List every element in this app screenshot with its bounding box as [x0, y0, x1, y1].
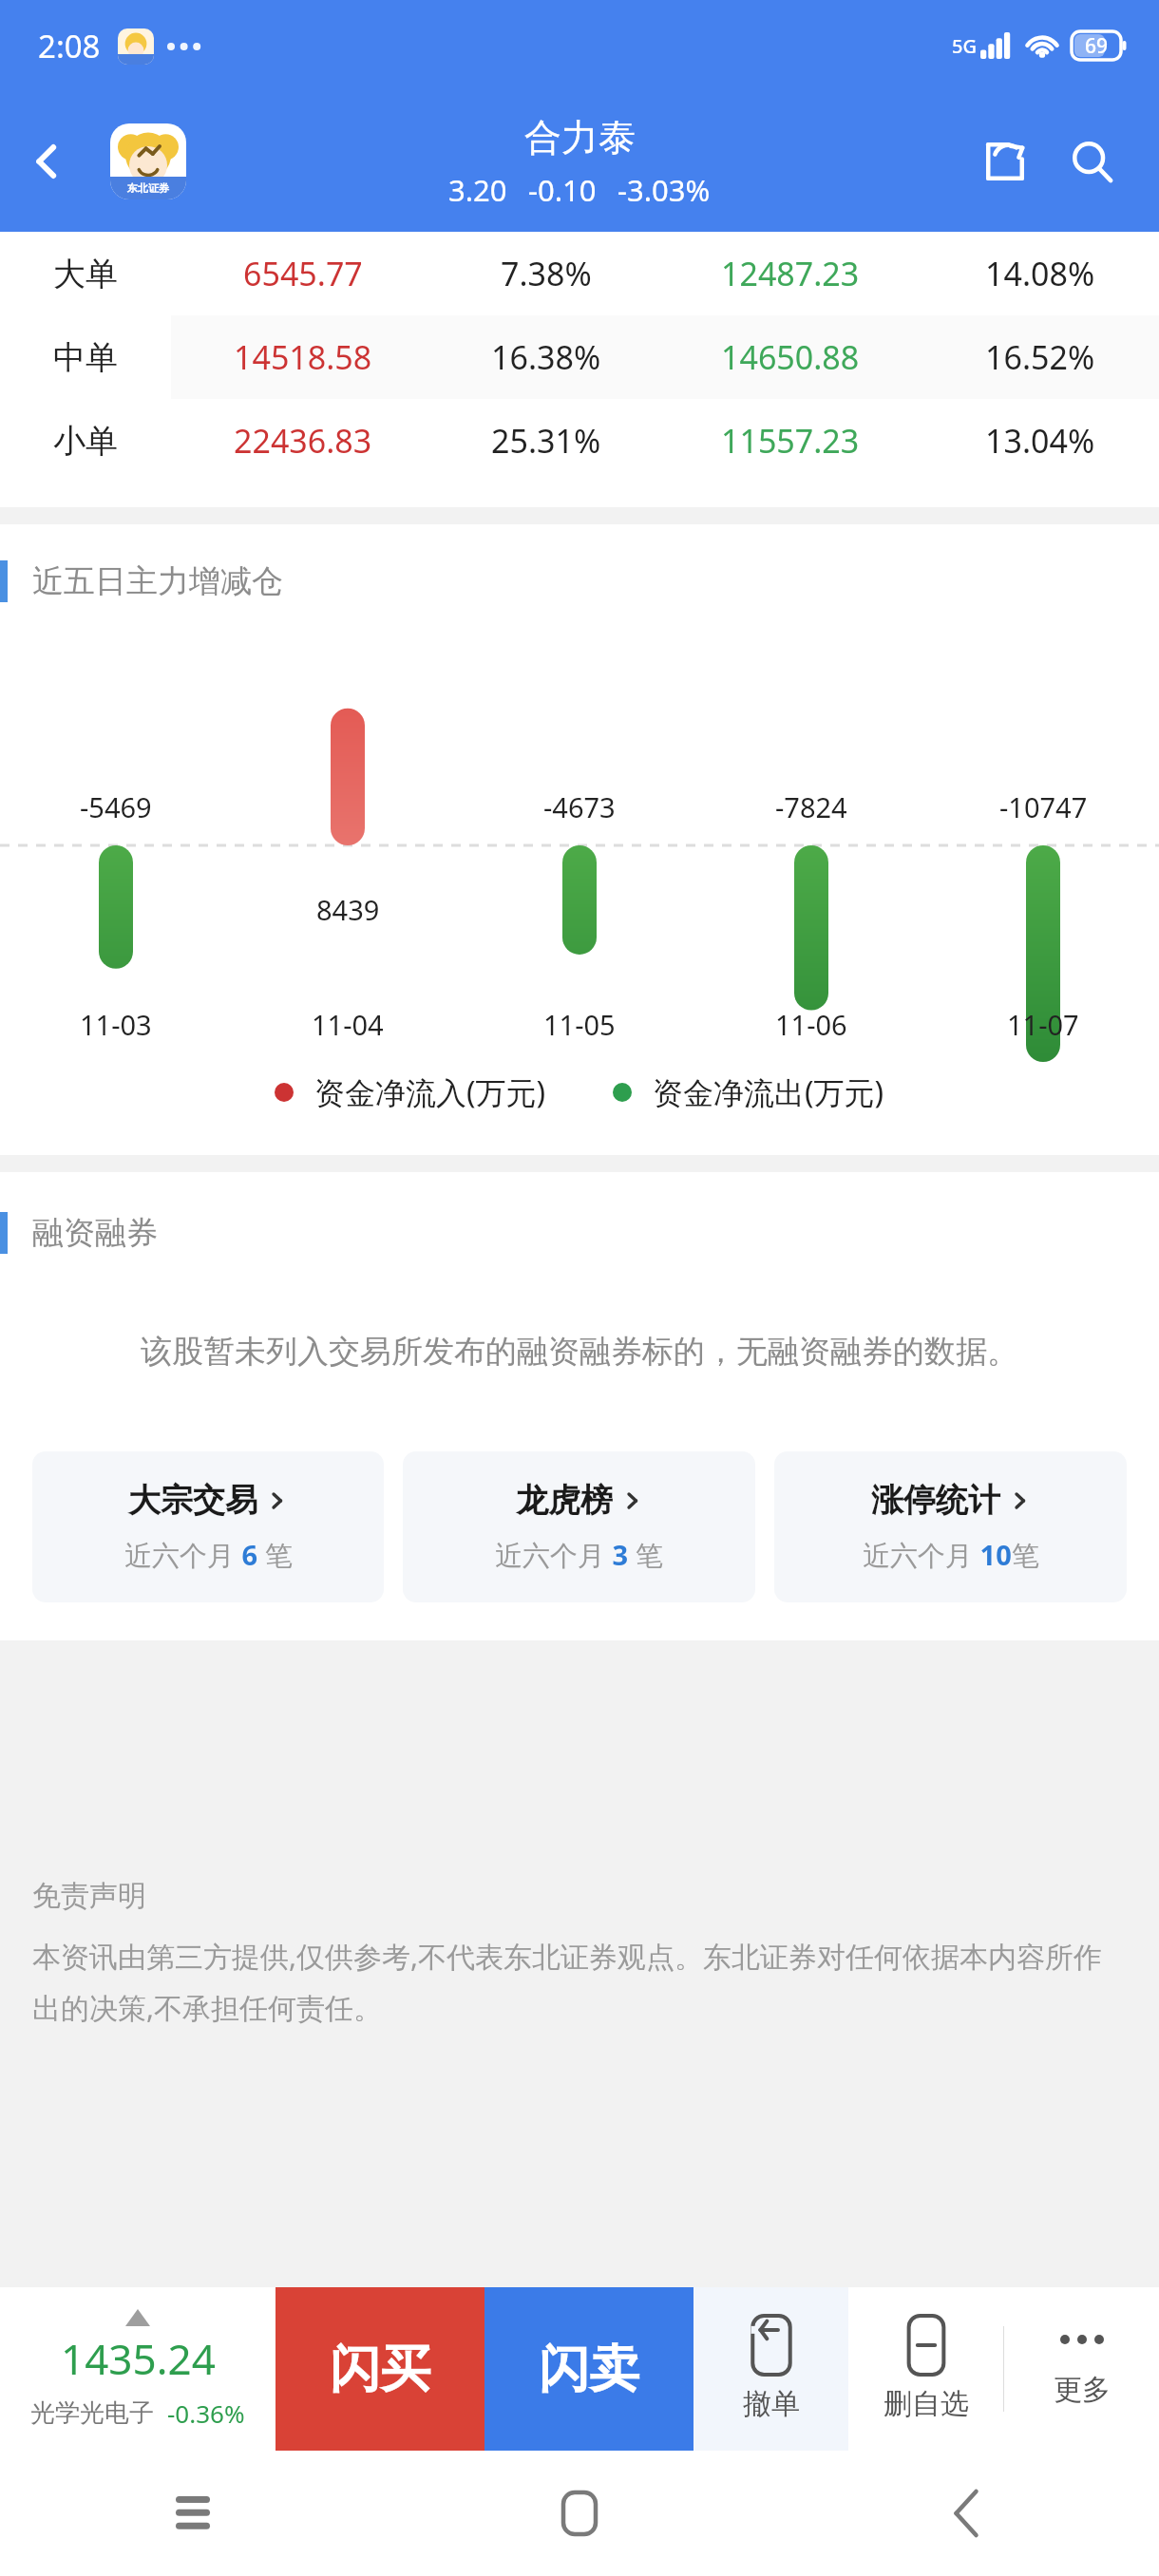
button[interactable]: 更多: [1004, 2287, 1159, 2451]
staticText: 大宗交易: [128, 1480, 257, 1521]
staticText: 删自选: [883, 2386, 969, 2422]
staticText: 近五日主力增减仓: [32, 561, 283, 601]
staticText: 12487.23: [721, 252, 860, 295]
staticText: 16.38%: [491, 335, 601, 379]
button[interactable]: 大宗交易: [32, 1451, 384, 1602]
staticText: 69: [1085, 32, 1109, 60]
staticText: 1435.24: [61, 2330, 216, 2387]
staticText: 11-03: [80, 1006, 152, 1043]
staticText: 16.52%: [985, 335, 1095, 379]
button[interactable]: 涨停统计: [774, 1451, 1127, 1602]
staticText: 11557.23: [721, 419, 860, 463]
staticText: 中单: [53, 337, 118, 378]
staticText: 11-04: [312, 1006, 384, 1043]
staticText: 大单: [53, 254, 118, 294]
staticText: 11-07: [1007, 1006, 1079, 1043]
staticText: 13.04%: [985, 419, 1095, 463]
staticText: 资金净流出(万元): [653, 1071, 884, 1113]
staticText: -5469: [80, 788, 152, 825]
staticText: 11-06: [775, 1006, 847, 1043]
staticText: 资金净流入(万元): [314, 1071, 546, 1113]
staticText: 14518.58: [234, 335, 372, 379]
staticText: 3.20: [448, 170, 507, 210]
button[interactable]: Search: [1049, 118, 1136, 205]
staticText: 8439: [316, 891, 380, 928]
staticText: -10747: [999, 788, 1088, 825]
button[interactable]: 闪买: [275, 2287, 484, 2451]
staticText: 11-05: [543, 1006, 616, 1043]
button[interactable]: 撤单: [693, 2287, 848, 2451]
staticText: 该股暂未列入交易所发布的融资融券标的，无融资融券的数据。: [66, 1332, 1092, 1372]
staticText: 7.38%: [501, 252, 592, 295]
button[interactable]: Home: [386, 2451, 772, 2576]
staticText: 涨停统计: [871, 1480, 1000, 1521]
button[interactable]: Recents: [0, 2451, 386, 2576]
staticText: 6545.77: [243, 252, 363, 295]
button[interactable]: 删自选: [848, 2287, 1003, 2451]
staticText: 近六个月 6 笔: [124, 1536, 293, 1574]
staticText: 近六个月 3 笔: [495, 1536, 663, 1574]
staticText: 25.31%: [491, 419, 601, 463]
staticText: -7824: [775, 788, 847, 825]
button[interactable]: Back: [772, 2451, 1159, 2576]
staticText: 5G: [952, 33, 977, 59]
staticText: 闪卖: [539, 2338, 639, 2401]
staticText: 合力泰: [524, 114, 636, 161]
button[interactable]: Back: [0, 114, 95, 209]
staticText: 14.08%: [985, 252, 1095, 295]
button[interactable]: 闪卖: [484, 2287, 693, 2451]
staticText: 免责声明: [32, 1878, 146, 1914]
staticText: 22436.83: [234, 419, 372, 463]
staticText: 小单: [53, 421, 118, 462]
staticText: 闪买: [330, 2338, 430, 2401]
staticText: -3.03%: [617, 170, 711, 210]
staticText: 14650.88: [721, 335, 860, 379]
staticText: 光学光电子: [30, 2397, 154, 2429]
staticText: 撤单: [743, 2386, 800, 2422]
staticText: 更多: [1054, 2372, 1111, 2408]
button[interactable]: 龙虎榜: [403, 1451, 755, 1602]
staticText: 近六个月 10笔: [863, 1536, 1039, 1574]
staticText: 2:08: [38, 25, 101, 67]
staticText: 龙虎榜: [516, 1480, 613, 1521]
staticText: 本资讯由第三方提供,仅供参考,不代表东北证券观点。东北证券对任何依据本内容所作出…: [32, 1937, 1127, 2027]
staticText: -0.10: [528, 170, 597, 210]
staticText: 融资融券: [32, 1213, 158, 1253]
button[interactable]: 东北证券: [110, 123, 186, 199]
staticText: 东北证券: [127, 181, 169, 195]
staticText: -4673: [543, 788, 616, 825]
staticText: -0.36%: [167, 2396, 245, 2430]
button[interactable]: Share: [961, 118, 1049, 205]
button[interactable]: 1435.24: [0, 2287, 275, 2451]
